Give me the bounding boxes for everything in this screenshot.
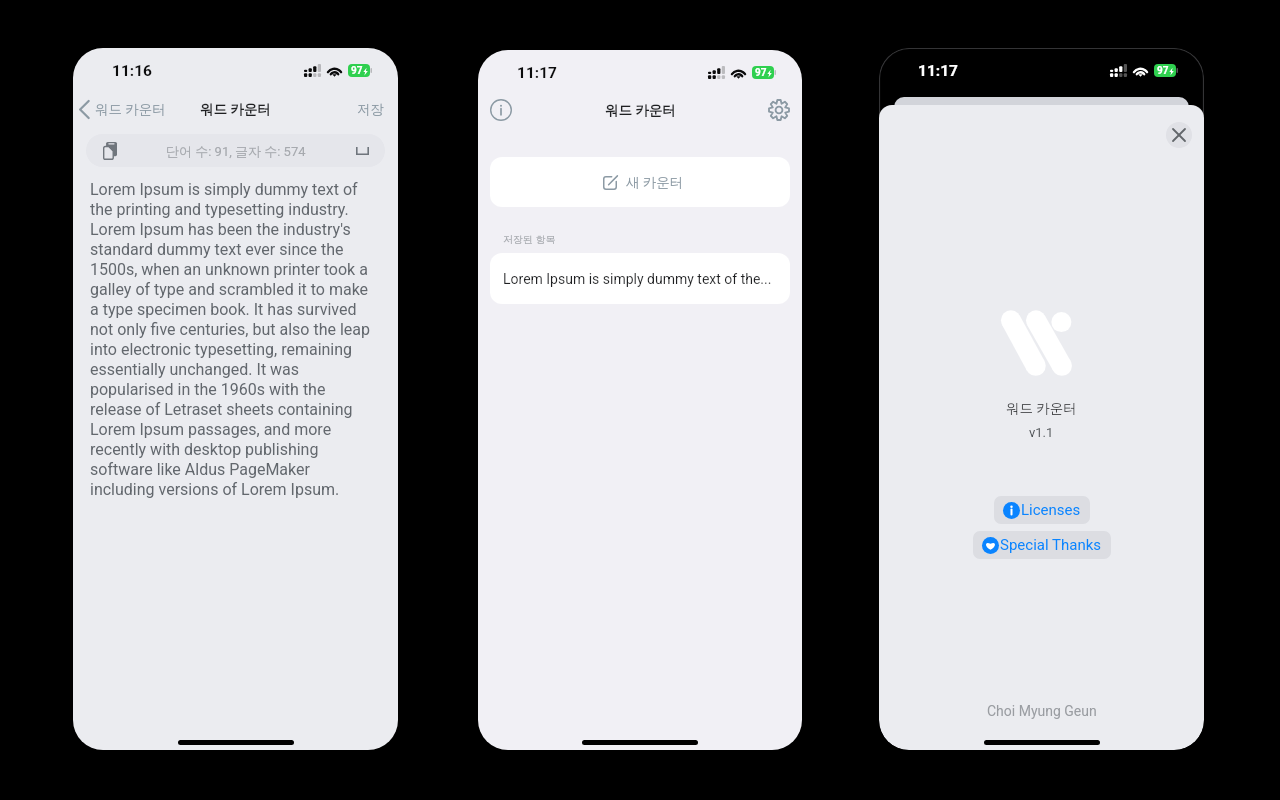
staticText: 워드 카운터 [605, 102, 676, 119]
button[interactable]: 워드 카운터 [73, 97, 172, 122]
staticText: Licenses [1021, 501, 1081, 519]
staticText: 11:17 [918, 62, 958, 80]
staticText: 11:17 [517, 64, 557, 82]
staticText: 97 [755, 67, 767, 79]
button[interactable]: 새 카운터 [490, 157, 790, 207]
staticText: 97 [351, 65, 363, 77]
staticText: 워드 카운터 [1006, 400, 1077, 417]
staticText: 단어 수: 91, 글자 수: 574 [166, 143, 306, 159]
staticText: 저장된 항목 [503, 233, 556, 246]
button[interactable]: 단어 수: 91, 글자 수: 574 [86, 134, 385, 167]
button[interactable]: Settings [768, 99, 790, 121]
staticText: 워드 카운터 [200, 101, 271, 118]
staticText: Lorem Ipsum is simply dummy text of the.… [503, 271, 772, 287]
staticText: 97 [1157, 65, 1169, 77]
button[interactable]: Info [490, 99, 512, 121]
staticText: Lorem Ipsum is simply dummy text of the … [90, 180, 372, 499]
staticText: v1.1 [1029, 425, 1054, 440]
staticText: 새 카운터 [626, 174, 684, 191]
button[interactable]: 저장 [349, 97, 398, 122]
staticText: 워드 카운터 [95, 101, 166, 118]
button[interactable]: Special Thanks [973, 531, 1111, 559]
staticText: 11:16 [112, 62, 152, 80]
staticText: Choi Myung Geun [987, 703, 1097, 719]
button[interactable]: Licenses [994, 496, 1090, 524]
button[interactable]: Lorem Ipsum is simply dummy text of the.… [490, 253, 790, 304]
staticText: Special Thanks [1000, 536, 1102, 554]
button[interactable]: Close [1166, 122, 1192, 148]
